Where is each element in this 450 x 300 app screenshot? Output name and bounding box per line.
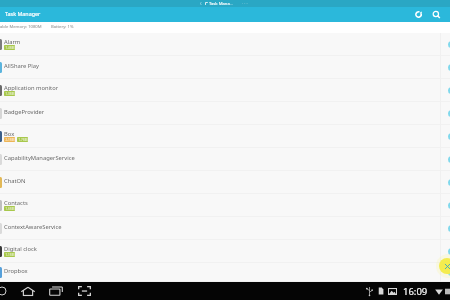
button[interactable]: Stop app (448, 179, 450, 186)
staticText: 1.7MB (18, 138, 28, 142)
staticText: Task Mana (209, 1, 230, 7)
staticText: Battery: 1% (51, 24, 74, 30)
staticText: 1.4MB (5, 46, 15, 50)
staticText: Dropbox (4, 267, 28, 275)
button[interactable]: Box (0, 125, 450, 148)
button[interactable]: Alarm (0, 33, 450, 56)
button[interactable]: ContextAwareService (0, 217, 450, 240)
staticText: Task Manager (5, 10, 41, 17)
button[interactable]: Stop app (448, 87, 450, 94)
button[interactable]: End all applications (439, 258, 450, 274)
staticText: Box (4, 130, 15, 138)
staticText: able Memory: 1080M (0, 24, 42, 30)
staticText: 1.3MB (5, 92, 15, 96)
staticText: · · · (242, 1, 248, 7)
button[interactable]: ChatON (0, 171, 450, 194)
button[interactable]: Stop app (448, 133, 450, 140)
button[interactable]: Stop app (448, 64, 450, 71)
button[interactable]: Home (20, 283, 36, 299)
button[interactable]: Search (428, 7, 444, 22)
staticText: Alarm (4, 38, 21, 46)
staticText: BadgeProvider (4, 108, 45, 116)
staticText: 16:09 (403, 285, 428, 298)
button[interactable]: Stop app (448, 110, 450, 117)
button[interactable]: Stop app (448, 156, 450, 163)
button[interactable]: Recent apps (48, 283, 64, 299)
button[interactable]: Application monitor (0, 79, 450, 102)
button[interactable]: CapabilityManagerService (0, 148, 450, 171)
staticText: AllShare Play (4, 62, 39, 70)
staticText: 1.1MB (5, 253, 15, 257)
button[interactable]: Stop app (448, 202, 450, 209)
button[interactable]: BadgeProvider (0, 102, 450, 125)
staticText: Contacts (4, 199, 28, 207)
button[interactable]: Back (0, 283, 10, 299)
staticText: … (230, 1, 234, 7)
button[interactable]: Stop app (448, 41, 450, 48)
button[interactable]: Stop app (448, 269, 450, 276)
button[interactable]: Refresh (410, 7, 426, 22)
staticText: CapabilityManagerService (4, 154, 75, 162)
staticText: ‹ (200, 0, 202, 7)
button[interactable]: Stop app (448, 248, 450, 255)
button[interactable]: Dropbox (0, 263, 450, 282)
button[interactable]: AllShare Play (0, 56, 450, 79)
staticText: ContextAwareService (4, 223, 62, 231)
staticText: Application monitor (4, 84, 59, 92)
button[interactable]: Stop app (448, 225, 450, 232)
staticText: ChatON (4, 177, 26, 185)
staticText: 1.6MB (5, 207, 15, 211)
staticText: Digital clock (4, 245, 37, 253)
button[interactable]: Digital clock (0, 240, 450, 263)
button[interactable]: Screenshot (76, 283, 92, 299)
staticText: 2.1MB (5, 138, 15, 142)
button[interactable]: Contacts (0, 194, 450, 217)
